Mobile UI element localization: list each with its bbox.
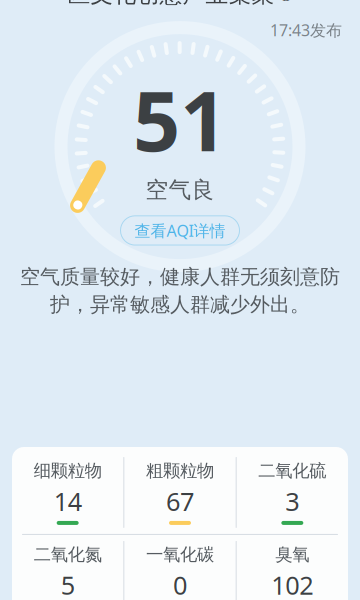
- staticText: 3: [285, 484, 299, 518]
- staticText: 102: [271, 568, 313, 600]
- staticText: 细颗粒物: [34, 460, 102, 481]
- staticText: 67: [166, 484, 194, 518]
- staticText: 空气良: [145, 176, 214, 204]
- staticText: 二氧化氮: [34, 544, 102, 565]
- staticText: 臭氧: [275, 544, 309, 565]
- staticText: 粗颗粒物: [146, 460, 214, 481]
- staticText: 区文化创意产业集聚: [67, 0, 274, 8]
- staticText: 查看AQI详情: [134, 220, 225, 241]
- staticText: 5: [61, 568, 75, 600]
- staticText: 空气质量较好，健康人群无须刻意防: [20, 265, 340, 289]
- staticText: ◍: [279, 0, 292, 3]
- staticText: 二氧化硫: [258, 460, 326, 481]
- button[interactable]: 查看AQI详情: [120, 216, 239, 245]
- button[interactable]: 区文化创意产业集聚: [67, 0, 292, 12]
- staticText: 51: [133, 64, 227, 174]
- staticText: 护，异常敏感人群减少外出。: [50, 292, 310, 317]
- staticText: 17:43发布: [270, 19, 342, 41]
- staticText: 一氧化碳: [146, 544, 214, 565]
- staticText: 14: [54, 484, 82, 518]
- staticText: 0: [173, 568, 187, 600]
